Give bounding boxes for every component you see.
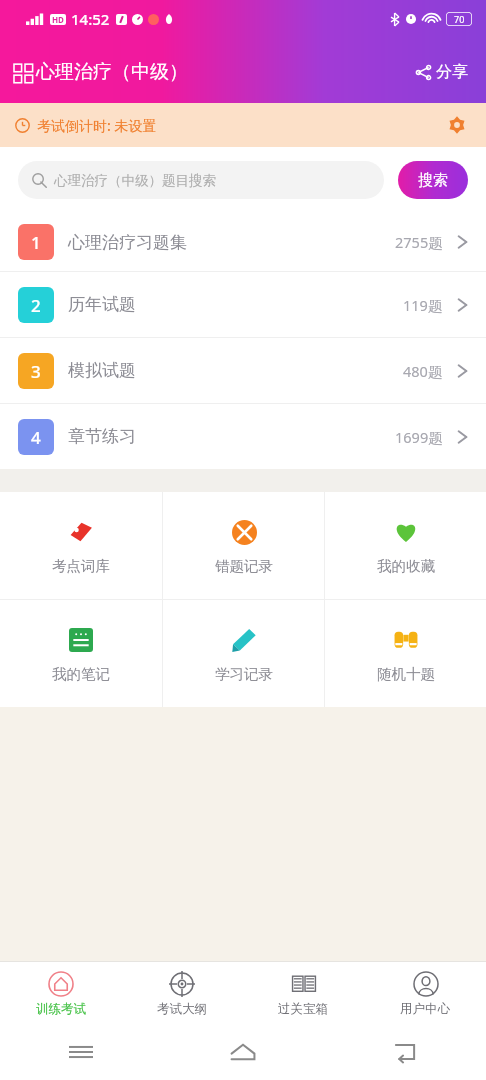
staticText: 考点词库 xyxy=(52,557,110,575)
staticText: 分享 xyxy=(436,62,468,82)
staticText: 搜索 xyxy=(418,171,448,190)
button[interactable]: Settings xyxy=(444,112,470,138)
button[interactable]: 我的收藏 xyxy=(325,492,486,599)
button[interactable]: 考试倒计时: 未设置 xyxy=(0,103,486,147)
staticText: 2755题 xyxy=(395,232,443,252)
button[interactable]: 错题记录 xyxy=(163,492,324,599)
button[interactable]: 4 xyxy=(0,404,486,469)
button[interactable]: 搜索 xyxy=(398,161,468,199)
staticText: 模拟试题 xyxy=(68,360,136,381)
button[interactable]: Home xyxy=(162,1024,324,1080)
button[interactable]: 学习记录 xyxy=(163,600,324,707)
button[interactable]: 考试大纲 xyxy=(121,962,242,1024)
button[interactable]: 我的笔记 xyxy=(0,600,162,707)
staticText: 心理治疗（中级）题目搜索 xyxy=(54,172,216,189)
staticText: 考试倒计时: 未设置 xyxy=(37,116,157,135)
staticText: 错题记录 xyxy=(215,557,273,575)
other: Recents xyxy=(69,1043,93,1061)
staticText: 4 xyxy=(31,426,41,449)
staticText: 心理治疗习题集 xyxy=(68,232,187,253)
button[interactable]: 1 xyxy=(0,213,486,271)
staticText: 2 xyxy=(31,294,41,317)
staticText: 14:52 xyxy=(71,9,110,29)
button[interactable]: Recents xyxy=(0,1024,162,1080)
staticText: 480题 xyxy=(403,361,443,381)
button[interactable]: 心理治疗（中级）题目搜索 xyxy=(18,161,384,199)
staticText: 历年试题 xyxy=(68,294,136,315)
staticText: 1699题 xyxy=(395,427,443,447)
other: Settings xyxy=(448,116,466,134)
button[interactable]: Share xyxy=(413,56,470,88)
button[interactable]: Back xyxy=(324,1024,486,1080)
staticText: 我的收藏 xyxy=(377,557,435,575)
staticText: 用户中心 xyxy=(400,1001,450,1017)
button[interactable]: 训练考试 xyxy=(0,962,121,1024)
button[interactable]: 过关宝箱 xyxy=(242,962,364,1024)
staticText: 我的笔记 xyxy=(52,665,110,683)
staticText: 心理治疗（中级） xyxy=(36,60,188,84)
other: Home xyxy=(230,1042,256,1062)
other: Back xyxy=(393,1042,417,1062)
button[interactable]: 用户中心 xyxy=(364,962,486,1024)
staticText: 学习记录 xyxy=(215,665,273,683)
staticText: 119题 xyxy=(403,295,443,315)
staticText: 3 xyxy=(31,360,41,383)
other: Share xyxy=(415,64,432,81)
staticText: 过关宝箱 xyxy=(278,1001,328,1017)
button[interactable]: 随机十题 xyxy=(325,600,486,707)
staticText: 考试大纲 xyxy=(157,1001,207,1017)
button[interactable]: 3 xyxy=(0,338,486,403)
staticText: 训练考试 xyxy=(36,1001,86,1017)
button[interactable]: 考点词库 xyxy=(0,492,162,599)
staticText: HD xyxy=(52,14,64,25)
staticText: 随机十题 xyxy=(377,665,435,683)
button[interactable]: 心理治疗（中级） xyxy=(14,54,188,90)
staticText: 70 xyxy=(454,13,465,25)
staticText: 章节练习 xyxy=(68,426,136,447)
staticText: 1 xyxy=(31,231,41,254)
button[interactable]: 2 xyxy=(0,272,486,337)
